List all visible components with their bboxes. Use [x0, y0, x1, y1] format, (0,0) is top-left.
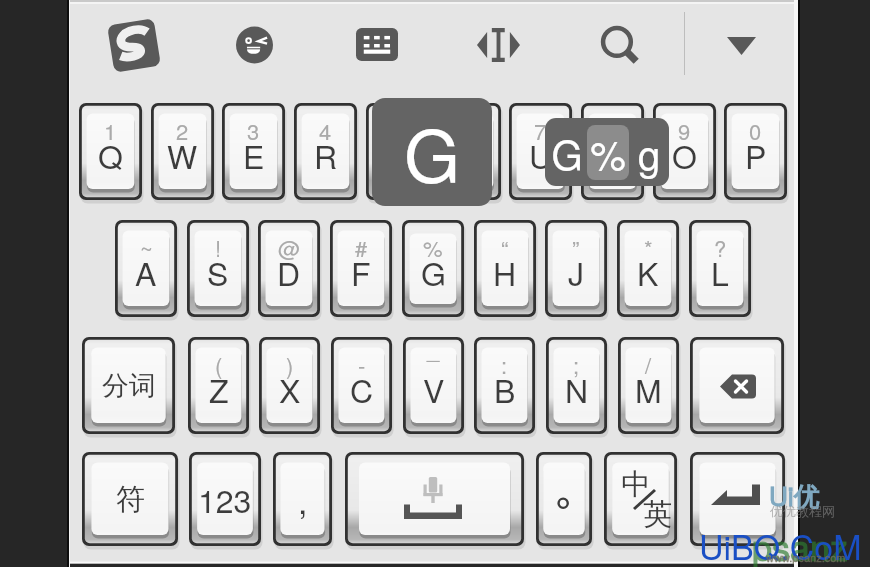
staticText: ” — [572, 232, 580, 264]
staticText: E — [243, 132, 265, 178]
staticText: UiBQ.CoM — [699, 521, 862, 567]
button[interactable]: - — [331, 337, 392, 434]
button[interactable]: 0 — [724, 103, 787, 200]
button[interactable]: 2 — [151, 103, 214, 200]
button[interactable]: Search — [590, 15, 650, 75]
button[interactable]: 4 — [294, 103, 357, 200]
staticText: F — [351, 249, 371, 295]
staticText: psanz — [752, 520, 849, 567]
button[interactable] — [690, 337, 784, 434]
staticText: I — [608, 132, 617, 178]
staticText: ) — [286, 349, 294, 381]
button[interactable]: 5 — [366, 103, 429, 200]
button[interactable] — [536, 452, 592, 546]
staticText: www.psanz.com — [766, 549, 846, 565]
staticText: G — [404, 100, 461, 203]
staticText: R — [314, 132, 338, 178]
staticText: ? — [714, 232, 727, 264]
button[interactable]: G — [372, 98, 492, 206]
button[interactable]: 7 — [509, 103, 572, 200]
staticText: X — [279, 366, 301, 412]
staticText: 8 — [606, 115, 619, 147]
button[interactable]: ~ — [115, 220, 177, 317]
button[interactable]: 中 — [604, 452, 677, 546]
button[interactable]: : — [474, 337, 535, 434]
staticText: V — [423, 366, 445, 412]
staticText: - — [358, 349, 366, 381]
staticText: Z — [209, 366, 229, 412]
button[interactable]: ” — [545, 220, 607, 317]
button[interactable]: Emoji — [224, 14, 285, 76]
button[interactable] — [690, 452, 785, 546]
staticText: W — [167, 132, 198, 178]
button[interactable]: , — [273, 452, 332, 546]
staticText: ( — [215, 349, 223, 381]
button[interactable]: _ — [403, 337, 464, 434]
staticText: C — [350, 366, 374, 412]
staticText: Ui优 — [769, 476, 820, 514]
staticText: g — [629, 124, 669, 181]
staticText: 123 — [198, 476, 252, 522]
staticText: 优优教程网 — [770, 503, 835, 519]
button[interactable]: % — [402, 220, 464, 317]
button[interactable]: 123 — [189, 452, 261, 546]
staticText: K — [637, 249, 659, 295]
button[interactable]: 8 — [581, 103, 644, 200]
staticText: _ — [427, 333, 440, 365]
staticText: , — [298, 475, 308, 524]
staticText: B — [494, 366, 516, 412]
staticText: M — [635, 366, 662, 412]
staticText: 英 — [643, 496, 672, 533]
staticText: G — [421, 249, 446, 295]
button[interactable]: 分词 — [82, 337, 175, 434]
staticText: ! — [215, 232, 222, 264]
button[interactable]: / — [618, 337, 679, 434]
staticText: D — [277, 249, 301, 295]
staticText: 3 — [247, 115, 260, 147]
button[interactable] — [345, 452, 524, 546]
button[interactable]: 1 — [79, 103, 142, 200]
button[interactable]: ! — [187, 220, 249, 317]
button[interactable]: ) — [259, 337, 320, 434]
button[interactable]: 6 — [438, 103, 501, 200]
staticText: : — [501, 349, 508, 381]
staticText: # — [355, 232, 368, 264]
staticText: 1 — [104, 115, 117, 147]
button[interactable]: # — [330, 220, 392, 317]
button[interactable]: 符 — [82, 452, 178, 546]
staticText: 4 — [319, 115, 332, 147]
staticText: G — [547, 124, 587, 181]
button[interactable]: Move cursor — [465, 16, 532, 74]
staticText: % — [587, 124, 629, 181]
staticText: P — [745, 132, 767, 178]
button[interactable]: @ — [258, 220, 320, 317]
button[interactable]: G — [545, 118, 669, 186]
button[interactable]: Hide keyboard — [715, 25, 768, 67]
button[interactable]: 3 — [222, 103, 285, 200]
staticText: 0 — [749, 115, 762, 147]
staticText: T — [388, 132, 408, 178]
button[interactable]: ? — [689, 220, 751, 317]
staticText: O — [672, 132, 697, 178]
button[interactable]: “ — [474, 220, 536, 317]
staticText: Q — [98, 132, 123, 178]
button[interactable]: ; — [546, 337, 607, 434]
staticText: % — [423, 232, 443, 264]
staticText: @ — [278, 232, 301, 264]
staticText: 2 — [176, 115, 189, 147]
staticText: ~ — [140, 232, 153, 264]
staticText: N — [565, 366, 589, 412]
staticText: S — [207, 249, 229, 295]
button[interactable]: 9 — [653, 103, 716, 200]
staticText: ; — [573, 349, 580, 381]
button[interactable]: Sogou input method — [97, 7, 171, 84]
button[interactable]: * — [617, 220, 679, 317]
staticText: H — [493, 249, 517, 295]
staticText: 分词 — [102, 369, 156, 403]
staticText: 7 — [534, 115, 547, 147]
button[interactable]: ( — [188, 337, 249, 434]
button[interactable]: Keyboard layout — [344, 16, 410, 73]
